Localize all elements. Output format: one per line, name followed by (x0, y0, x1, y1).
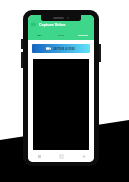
staticText: CAPTURE A VIDEO (53, 47, 76, 50)
button[interactable]: OUTPUT (72, 29, 94, 40)
staticText: REC (37, 33, 42, 36)
button[interactable]: CAPTURE A VIDEO (32, 44, 90, 53)
staticText: OUTPUT (78, 33, 88, 36)
staticText: Capture Video (39, 22, 66, 27)
button[interactable]: Home (50, 150, 72, 162)
staticText: PLAY (58, 33, 64, 36)
button[interactable]: REC (28, 29, 50, 40)
button[interactable]: Recents (28, 150, 50, 162)
button[interactable]: Navigate up (29, 20, 38, 29)
button[interactable]: Back (72, 150, 94, 162)
button[interactable]: PLAY (50, 29, 72, 40)
